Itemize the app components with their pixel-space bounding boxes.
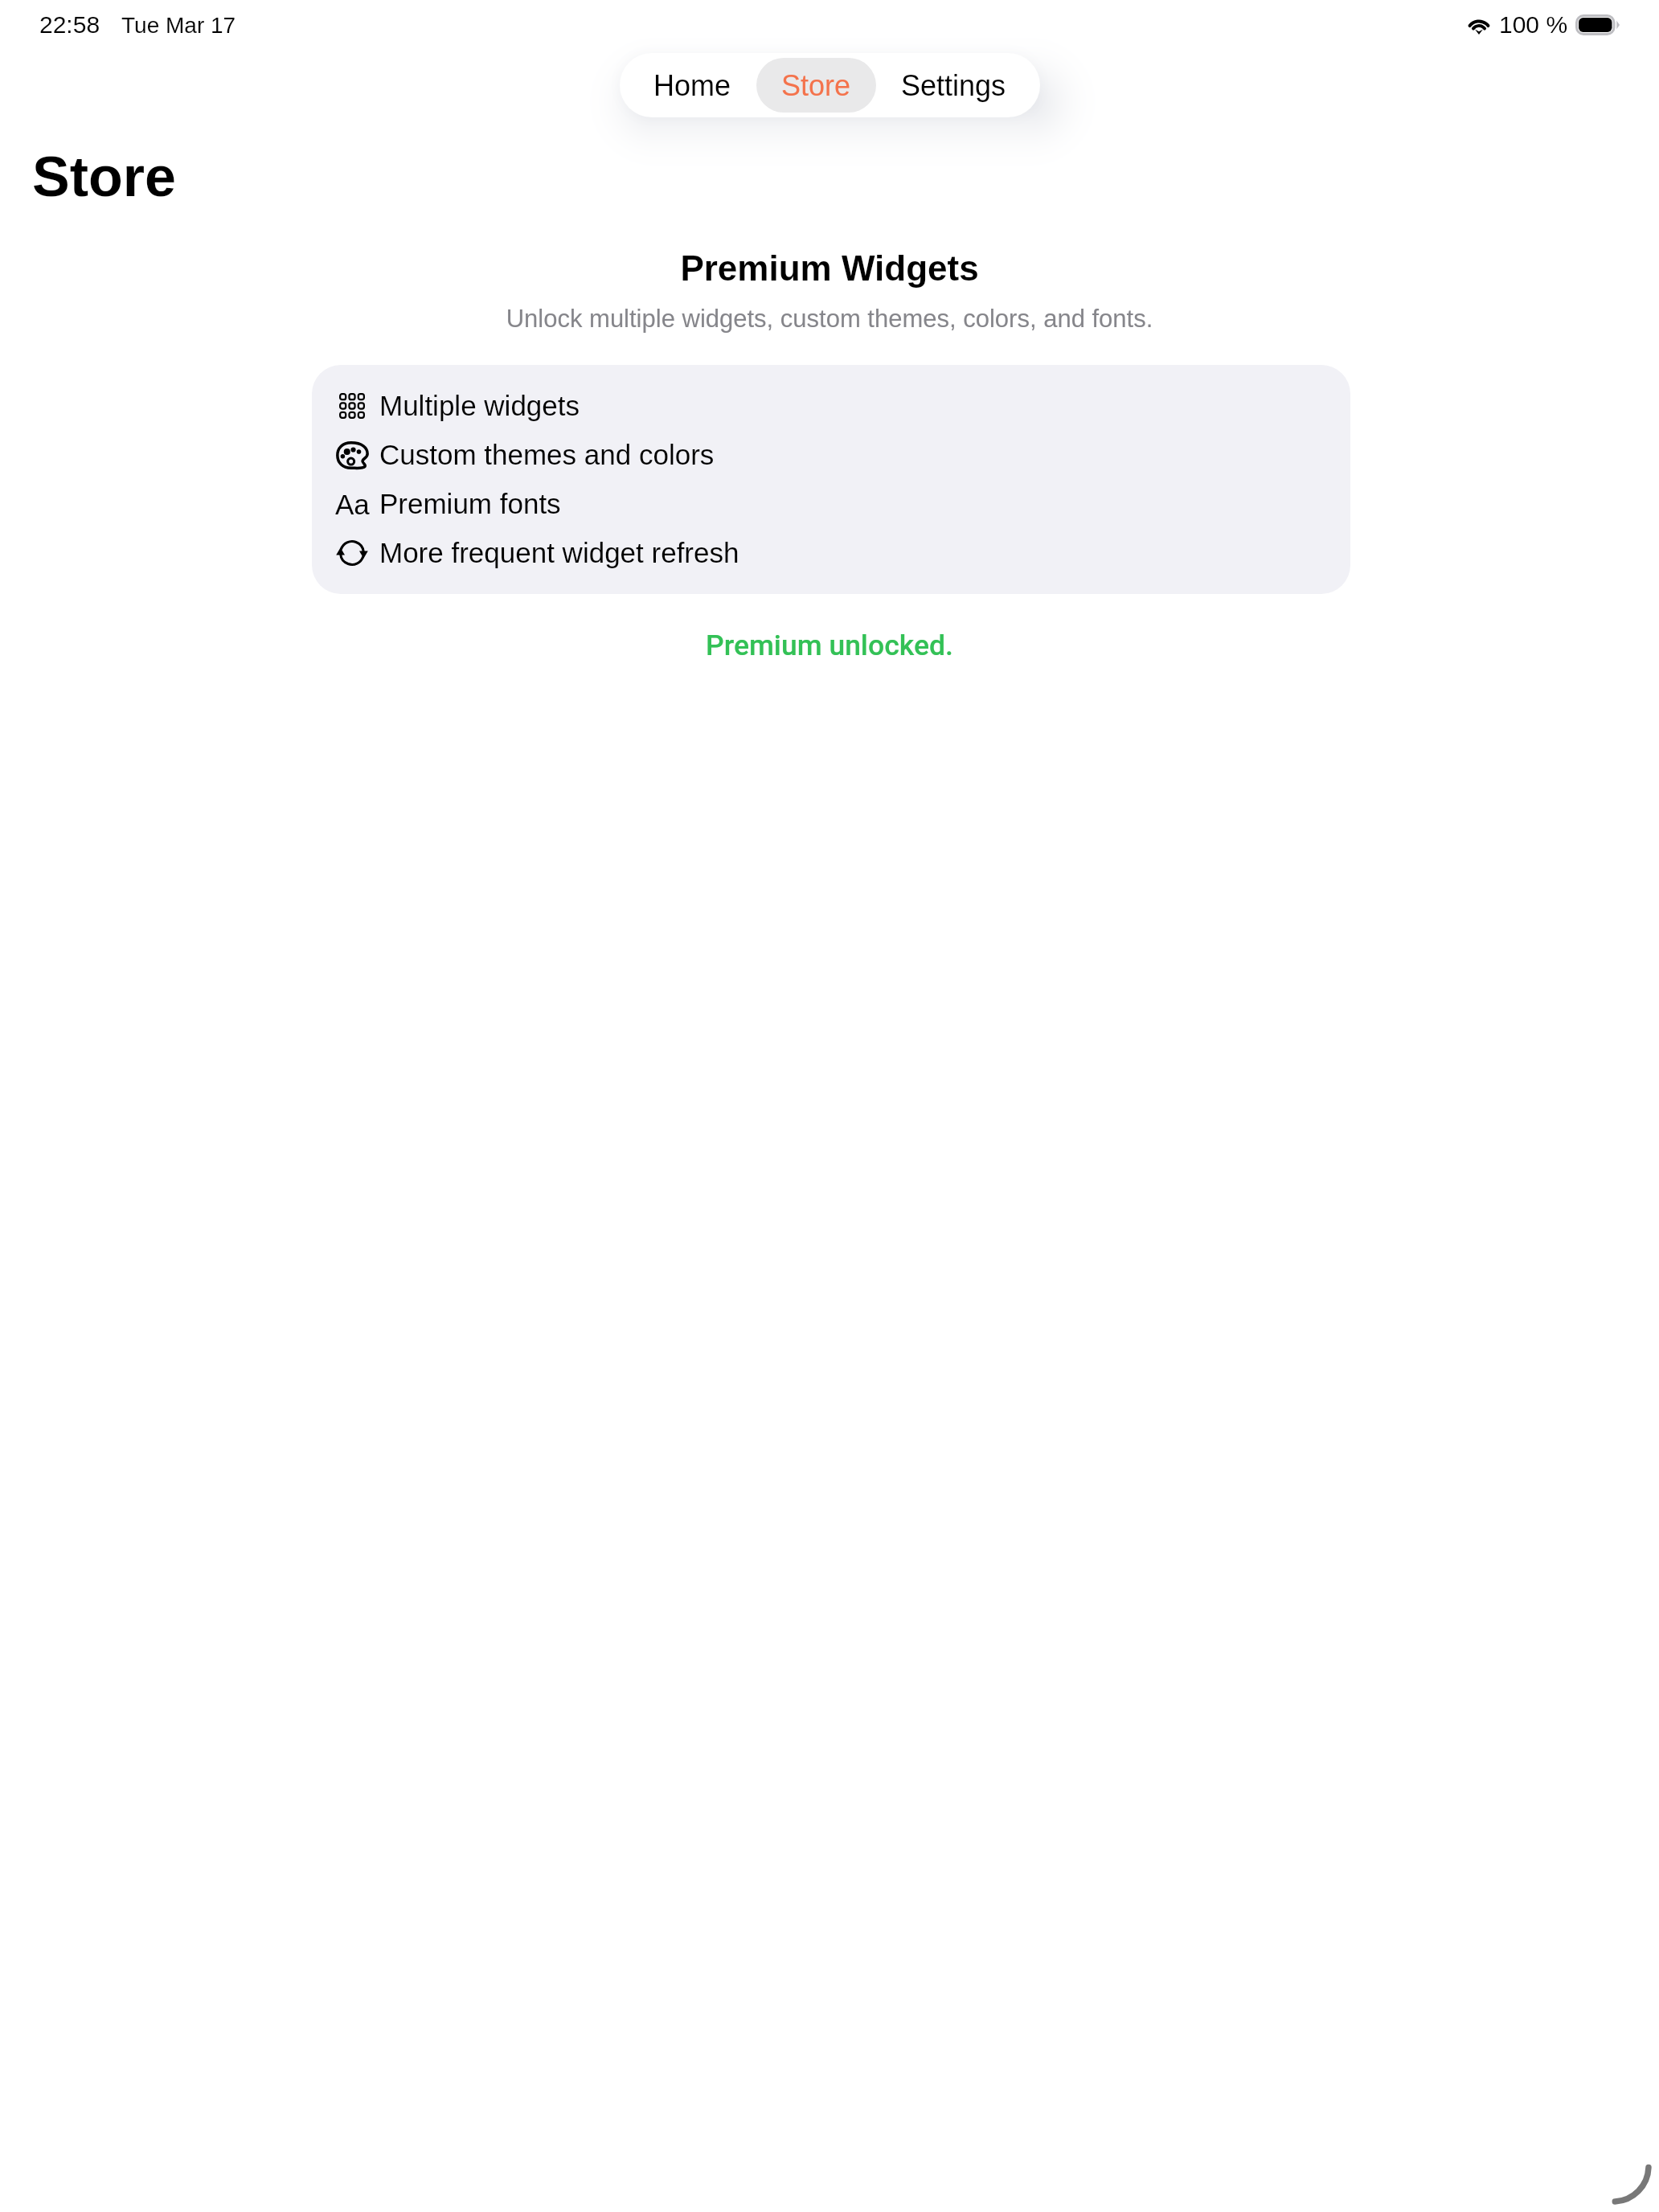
button[interactable]: Home	[629, 58, 756, 113]
staticText: 100 %	[1499, 11, 1568, 39]
other: Widgets grid	[338, 392, 366, 420]
staticText: Aa	[335, 489, 370, 520]
button[interactable]: Color palette	[312, 430, 1350, 479]
other: Wi-Fi signal	[1466, 14, 1492, 33]
other: Battery full	[1575, 14, 1620, 35]
staticText: Unlock multiple widgets, custom themes, …	[0, 305, 1659, 333]
staticText: More frequent widget refresh	[379, 537, 739, 568]
staticText: Premium fonts	[379, 488, 561, 519]
button[interactable]: Widgets grid	[312, 381, 1350, 430]
staticText: Home	[653, 69, 731, 101]
staticText: Premium Widgets	[0, 248, 1659, 288]
staticText: Multiple widgets	[379, 390, 580, 421]
button[interactable]: Aa	[312, 479, 1350, 528]
button[interactable]: Settings	[876, 58, 1031, 113]
staticText: Settings	[901, 69, 1006, 101]
button[interactable]: Store	[756, 58, 876, 113]
other: Refresh	[335, 539, 369, 567]
other: Color palette	[336, 441, 369, 469]
button[interactable]: Refresh	[312, 528, 1350, 577]
staticText: Premium unlocked.	[0, 629, 1659, 662]
staticText: Store	[781, 69, 851, 101]
staticText: Custom themes and colors	[379, 439, 715, 470]
staticText: Tue Mar 17	[121, 13, 236, 38]
staticText: Store	[32, 145, 176, 208]
staticText: 22:58	[39, 11, 100, 39]
